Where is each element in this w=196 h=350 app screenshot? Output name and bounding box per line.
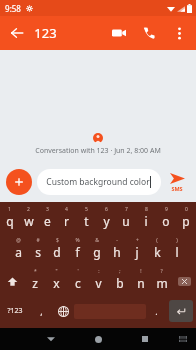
button[interactable]: 3 [38, 204, 57, 235]
staticText: ?123 [7, 306, 23, 316]
staticText: d [53, 244, 61, 260]
staticText: & [95, 237, 99, 244]
staticText: x [53, 275, 60, 291]
staticText: 9 [165, 206, 168, 213]
staticText: * [34, 268, 37, 275]
button[interactable]: Backspace [172, 266, 196, 297]
staticText: p [182, 213, 190, 229]
staticText: ) [176, 237, 178, 244]
staticText: 3 [46, 206, 49, 213]
button[interactable]: Back [0, 16, 34, 50]
button[interactable]: Add attachment [6, 169, 32, 195]
staticText: 9:58 [5, 3, 21, 14]
staticText: ; [119, 268, 121, 275]
staticText: q [6, 213, 14, 229]
button[interactable]: ' [67, 266, 88, 297]
staticText: 4 [65, 206, 68, 213]
staticText: : [98, 268, 100, 275]
staticText: j [135, 244, 139, 260]
staticText: h [113, 244, 121, 260]
staticText: ! [140, 268, 142, 275]
button[interactable]: + [127, 235, 147, 266]
button[interactable]: 5 [76, 204, 96, 235]
staticText: ? [160, 268, 163, 275]
staticText: - [116, 237, 118, 244]
button[interactable]: ?123 [0, 297, 30, 325]
staticText: w [24, 213, 34, 229]
button[interactable]: Back [40, 328, 62, 350]
staticText: l [175, 244, 179, 260]
staticText: " [55, 268, 58, 275]
staticText: Custom background color [46, 176, 150, 188]
staticText: . [155, 305, 158, 317]
staticText: v [95, 275, 102, 291]
staticText: 1 [8, 206, 11, 213]
button[interactable]: Video call [104, 18, 134, 48]
button[interactable]: * [24, 266, 46, 297]
staticText: k [154, 244, 161, 260]
staticText: c [75, 275, 81, 291]
button[interactable]: - [107, 235, 127, 266]
staticText: + [136, 237, 139, 244]
staticText: Conversation with 123 · Jun 2, 8:00 AM [35, 146, 161, 156]
button[interactable]: Home [87, 328, 109, 350]
staticText: @ [16, 237, 21, 244]
button[interactable]: % [67, 235, 87, 266]
button[interactable]: Shift [0, 266, 24, 297]
staticText: y [103, 213, 110, 229]
staticText: 5 [85, 206, 88, 213]
staticText: 6 [105, 206, 108, 213]
staticText: # [36, 237, 40, 244]
staticText: % [75, 237, 80, 244]
staticText: 0 [185, 206, 188, 213]
staticText: u [122, 213, 130, 229]
button[interactable]: # [28, 235, 47, 266]
button[interactable]: ; [109, 266, 130, 297]
staticText: e [44, 213, 51, 229]
button[interactable]: 7 [116, 204, 136, 235]
staticText: f [75, 244, 80, 260]
button[interactable]: 0 [176, 204, 196, 235]
button[interactable]: Keyboard active [174, 330, 192, 348]
button[interactable]: Change language [52, 297, 74, 325]
button[interactable]: " [46, 266, 67, 297]
staticText: z [32, 275, 38, 291]
button[interactable]: Custom background color [37, 169, 161, 195]
button[interactable]: 4 [57, 204, 76, 235]
staticText: b [116, 275, 124, 291]
button[interactable]: : [88, 266, 109, 297]
staticText: ( [156, 237, 158, 244]
staticText: a [15, 244, 22, 260]
button[interactable]: $ [47, 235, 67, 266]
button[interactable]: Enter [169, 300, 193, 322]
staticText: SMS [171, 185, 183, 192]
staticText: n [137, 275, 145, 291]
staticText: i [144, 213, 148, 229]
staticText: m [156, 275, 168, 291]
staticText: t [84, 213, 89, 229]
button[interactable]: 8 [136, 204, 156, 235]
button[interactable]: & [87, 235, 107, 266]
button[interactable]: 1 [0, 204, 19, 235]
staticText: , [40, 305, 43, 317]
button[interactable]: ? [151, 266, 172, 297]
button[interactable]: Recent apps [134, 328, 156, 350]
staticText: r [64, 213, 69, 229]
button[interactable]: 2 [19, 204, 38, 235]
button[interactable]: Call [134, 18, 164, 48]
staticText: s [35, 244, 41, 260]
staticText: 7 [125, 206, 128, 213]
button[interactable]: ! [130, 266, 151, 297]
button[interactable]: ( [147, 235, 167, 266]
button[interactable]: 9 [156, 204, 176, 235]
button[interactable]: Period [146, 297, 166, 325]
staticText: g [93, 244, 101, 260]
staticText: 8 [145, 206, 148, 213]
button[interactable]: ) [167, 235, 187, 266]
button[interactable]: 6 [96, 204, 116, 235]
button[interactable]: Send SMS [164, 173, 190, 192]
button[interactable]: Comma [30, 297, 52, 325]
button[interactable]: @ [9, 235, 28, 266]
button[interactable]: More options [164, 18, 194, 48]
